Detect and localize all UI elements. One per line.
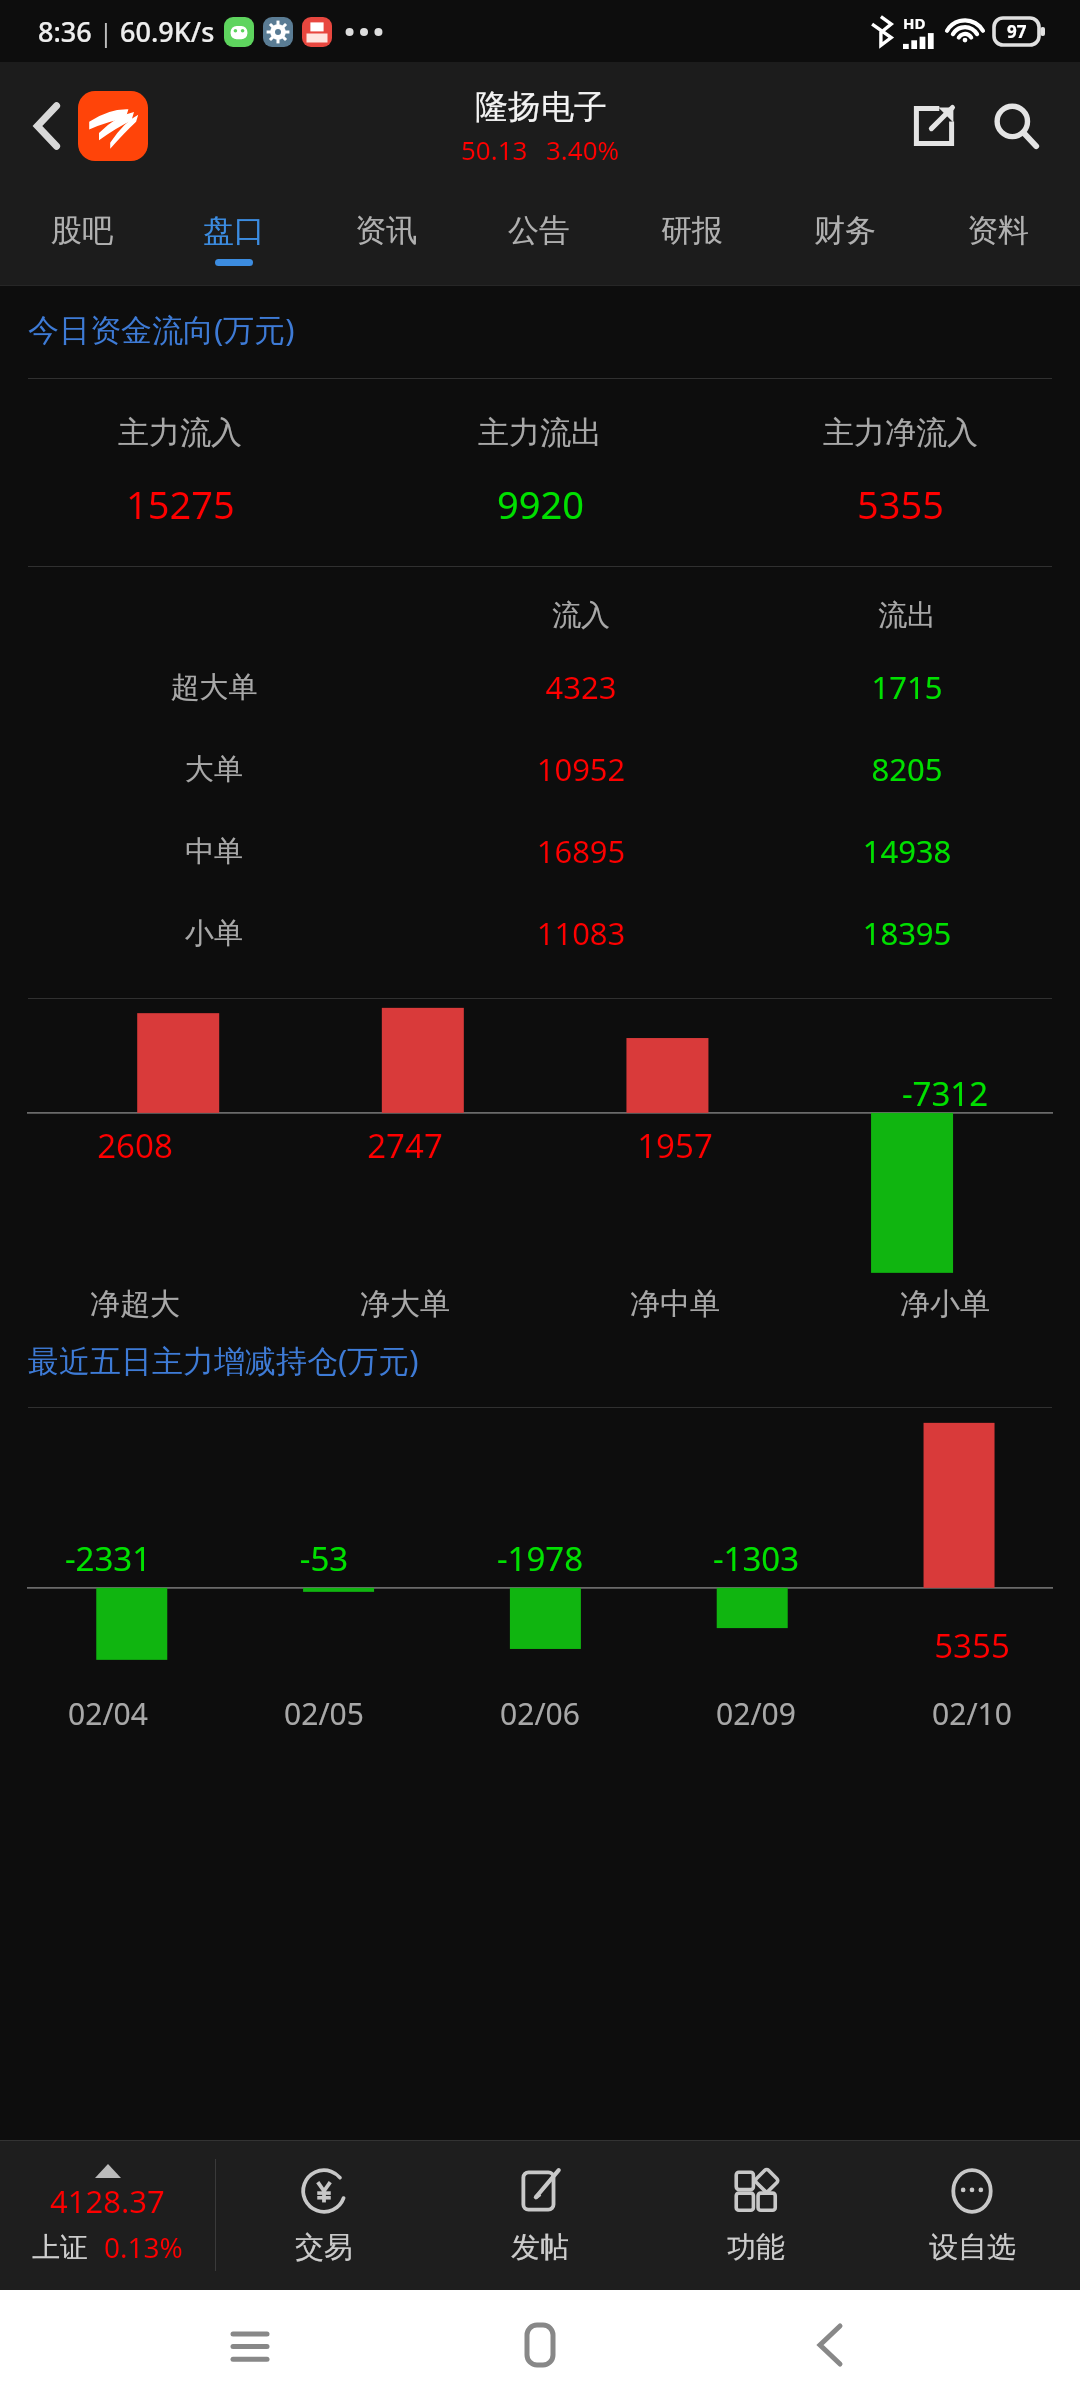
staticText: 2747	[270, 1123, 540, 1168]
staticText: 中单	[10, 833, 418, 870]
staticText: 主力流入	[118, 413, 242, 452]
staticText: -7312	[810, 1071, 1080, 1116]
staticText: 8:36	[38, 13, 92, 50]
staticText: 50.13	[461, 132, 528, 167]
button[interactable]: 资讯	[310, 190, 462, 286]
staticText: 5355	[857, 478, 944, 530]
button[interactable]: 盘口	[158, 190, 310, 286]
button[interactable]: Home	[500, 2305, 580, 2385]
staticText: HD	[903, 13, 926, 33]
staticText: 净超大	[0, 1285, 270, 1323]
staticText: 1715	[744, 666, 1070, 708]
staticText: 18395	[744, 912, 1070, 954]
staticText: 9920	[497, 478, 584, 530]
staticText: 主力流出	[478, 413, 602, 452]
staticText: 14938	[744, 830, 1070, 872]
button[interactable]: Recent apps	[210, 2305, 290, 2385]
staticText: 4128.37	[50, 2180, 165, 2222]
staticText: 功能	[727, 2229, 785, 2266]
staticText: 大单	[10, 751, 418, 788]
staticText: 交易	[295, 2229, 353, 2266]
button[interactable]: 大单	[0, 728, 1080, 810]
staticText: 主力净流入	[823, 413, 978, 452]
button[interactable]: 功能	[648, 2140, 864, 2290]
button[interactable]: 股吧	[6, 190, 158, 286]
button[interactable]: 4128.37	[0, 2140, 215, 2290]
button[interactable]: 设自选	[864, 2140, 1080, 2290]
button[interactable]: Share	[896, 88, 972, 164]
staticText: 上证	[32, 2230, 88, 2265]
staticText: 5355	[864, 1623, 1080, 1668]
staticText: -1978	[432, 1536, 648, 1581]
staticText: 3.40%	[546, 132, 620, 167]
staticText: 02/10	[864, 1693, 1080, 1734]
staticText: 资讯	[355, 211, 417, 250]
staticText: 8205	[744, 748, 1070, 790]
staticText: 1957	[540, 1123, 810, 1168]
staticText: 02/05	[216, 1693, 432, 1734]
staticText: 2608	[0, 1123, 270, 1168]
button[interactable]: 财务	[768, 190, 921, 286]
button[interactable]: 资料	[921, 190, 1074, 286]
staticText: 最近五日主力增减持仓(万元)	[28, 1339, 419, 1381]
staticText: 净中单	[540, 1285, 810, 1323]
button[interactable]: 公告	[462, 190, 615, 286]
staticText: 4323	[418, 666, 744, 708]
button[interactable]: 超大单	[0, 646, 1080, 728]
staticText: 02/04	[0, 1693, 216, 1734]
staticText: 设自选	[929, 2229, 1016, 2266]
button[interactable]: 小单	[0, 892, 1080, 974]
staticText: 02/09	[648, 1693, 864, 1734]
staticText: 60.9K/s	[120, 13, 215, 50]
staticText: 股吧	[51, 211, 113, 250]
staticText: 资料	[967, 211, 1029, 250]
staticText: -2331	[0, 1536, 216, 1581]
staticText: 隆扬电子	[475, 86, 607, 128]
staticText: |	[99, 15, 113, 49]
staticText: 16895	[418, 830, 744, 872]
staticText: 97	[1007, 20, 1027, 43]
staticText: 净大单	[270, 1285, 540, 1323]
staticText: 超大单	[10, 669, 418, 706]
staticText: 10952	[418, 748, 744, 790]
staticText: 11083	[418, 912, 744, 954]
staticText: 公告	[508, 211, 570, 250]
button[interactable]: Search	[978, 88, 1054, 164]
button[interactable]: App logo	[78, 91, 148, 161]
button[interactable]: 发帖	[432, 2140, 648, 2290]
staticText: 流出	[744, 597, 1070, 634]
button[interactable]: 研报	[615, 190, 768, 286]
staticText: -1303	[648, 1536, 864, 1581]
button[interactable]: Back	[790, 2305, 870, 2385]
staticText: 发帖	[511, 2229, 569, 2266]
button[interactable]: 中单	[0, 810, 1080, 892]
staticText: 流入	[418, 597, 744, 634]
staticText: 研报	[661, 211, 723, 250]
staticText: -53	[216, 1536, 432, 1581]
staticText: 今日资金流向(万元)	[28, 308, 295, 350]
staticText: 0.13%	[104, 2228, 183, 2266]
staticText: 财务	[814, 211, 876, 250]
staticText: 02/06	[432, 1693, 648, 1734]
staticText: 净小单	[810, 1285, 1080, 1323]
button[interactable]: Back	[14, 93, 80, 159]
staticText: 盘口	[203, 211, 265, 250]
staticText: 15275	[126, 478, 235, 530]
staticText: 小单	[10, 915, 418, 952]
button[interactable]: 交易	[216, 2140, 432, 2290]
